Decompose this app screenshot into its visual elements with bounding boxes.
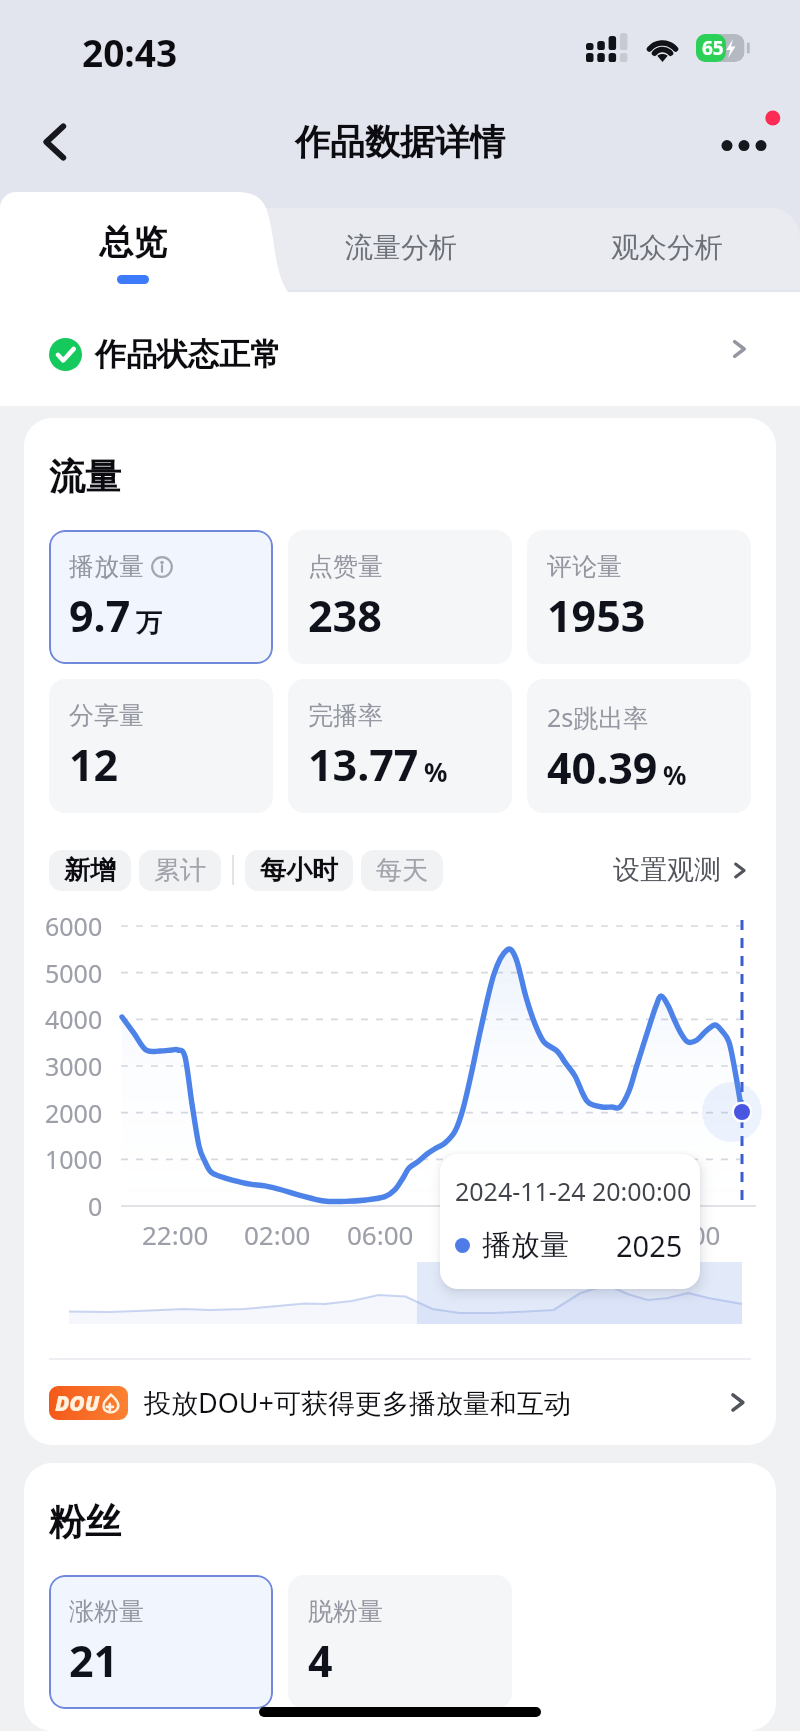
button[interactable]: 流量分析 <box>268 192 534 292</box>
staticText: 分享量 <box>69 700 144 731</box>
staticText: 流量分析 <box>345 230 457 265</box>
staticText: % <box>424 754 448 789</box>
button[interactable]: 作品状态正常 <box>0 292 800 406</box>
staticText: 投放DOU+可获得更多播放量和互动 <box>144 1384 571 1421</box>
button[interactable]: 设置观测 <box>613 853 751 887</box>
button[interactable]: 总览 <box>0 192 288 292</box>
staticText: 观众分析 <box>611 230 723 265</box>
button[interactable]: 涨粉量 <box>49 1575 273 1709</box>
staticText: 4000 <box>45 1002 103 1036</box>
staticText: 40.39 <box>547 738 658 797</box>
staticText: 6000 <box>45 909 103 943</box>
staticText: 5000 <box>45 956 103 990</box>
button[interactable]: 每天 <box>361 850 443 891</box>
staticText: 点赞量 <box>308 551 383 582</box>
staticText: 播放量 <box>482 1227 569 1264</box>
button[interactable]: 完播率 <box>288 679 512 813</box>
staticText: 1000 <box>45 1142 103 1176</box>
staticText: 涨粉量 <box>69 1596 144 1627</box>
staticText: 14:00 <box>551 1217 618 1252</box>
staticText: 2025 <box>616 1226 683 1265</box>
button[interactable]: 2s跳出率 <box>527 679 751 813</box>
staticText: 脱粉量 <box>308 1596 383 1627</box>
button[interactable]: 点赞量 <box>288 530 512 664</box>
button[interactable]: 播放量 <box>49 530 273 664</box>
staticText: 238 <box>308 586 382 645</box>
staticText: 02:00 <box>244 1217 311 1252</box>
staticText: 作品状态正常 <box>95 335 281 374</box>
button[interactable]: 新增 <box>49 850 131 891</box>
staticText: 22:00 <box>142 1217 209 1252</box>
staticText: 21 <box>69 1631 119 1690</box>
staticText: 10:00 <box>449 1217 516 1252</box>
button[interactable]: Back <box>26 112 86 172</box>
staticText: 06:00 <box>347 1217 414 1252</box>
staticText: 3000 <box>45 1049 103 1083</box>
staticText: % <box>663 757 687 792</box>
staticText: 播放量 <box>69 551 144 582</box>
button[interactable]: 累计 <box>139 850 221 891</box>
staticText: 12 <box>69 735 119 794</box>
staticText: 完播率 <box>308 700 383 731</box>
staticText: 65 <box>702 35 724 61</box>
button[interactable]: 脱粉量 <box>288 1575 512 1709</box>
staticText: 粉丝 <box>49 1499 121 1544</box>
staticText: 2s跳出率 <box>547 700 649 734</box>
staticText: 每小时 <box>260 854 338 887</box>
button[interactable]: 每小时 <box>245 850 353 891</box>
staticText: 4 <box>308 1631 333 1690</box>
staticText: 总览 <box>99 221 167 264</box>
staticText: 万 <box>136 607 162 640</box>
staticText: DOU <box>55 1389 100 1418</box>
staticText: 每天 <box>376 854 428 887</box>
staticText: 13.77 <box>308 735 419 794</box>
button[interactable]: 评论量 <box>527 530 751 664</box>
staticText: 流量 <box>49 454 121 499</box>
button[interactable]: DOU <box>24 1360 776 1445</box>
button[interactable]: 分享量 <box>49 679 273 813</box>
staticText: 作品数据详情 <box>295 120 505 164</box>
staticText: 20:43 <box>82 27 178 77</box>
staticText: 9.7 <box>69 586 131 645</box>
staticText: 评论量 <box>547 551 622 582</box>
staticText: 2000 <box>45 1096 103 1130</box>
staticText: 0 <box>88 1189 103 1223</box>
staticText: 1953 <box>547 586 646 645</box>
button[interactable]: 观众分析 <box>534 192 800 292</box>
staticText: 18:00 <box>654 1217 721 1252</box>
button[interactable]: More options <box>714 112 774 172</box>
staticText: 2024-11-24 20:00:00 <box>455 1174 700 1208</box>
staticText: 累计 <box>154 854 206 887</box>
staticText: 设置观测 <box>613 853 721 887</box>
staticText: 新增 <box>64 854 116 887</box>
